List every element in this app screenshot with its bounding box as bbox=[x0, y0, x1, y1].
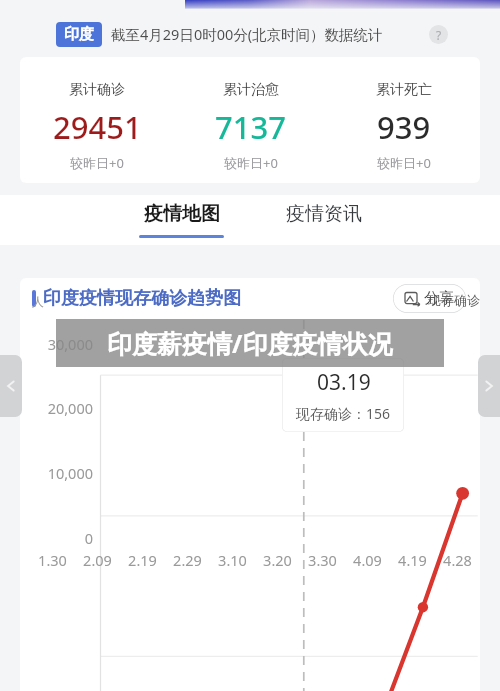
staticText: 累计治愈 bbox=[223, 81, 279, 99]
staticText: 人 bbox=[32, 294, 44, 309]
staticText: 1.30 bbox=[30, 550, 75, 570]
staticText: 4.09 bbox=[345, 550, 390, 570]
staticText: 较昨日+0 bbox=[224, 154, 278, 172]
staticText: 30,000 bbox=[20, 334, 93, 354]
button[interactable]: Previous bbox=[0, 355, 22, 417]
button[interactable]: 分享 bbox=[393, 284, 466, 313]
staticText: 现存确诊：156 bbox=[296, 404, 391, 423]
staticText: 较昨日+0 bbox=[70, 154, 124, 172]
staticText: 20,000 bbox=[20, 398, 93, 418]
staticText: 印度薪疫情/印度疫情状况 bbox=[107, 326, 393, 360]
staticText: 累计确诊 bbox=[69, 81, 125, 99]
button[interactable]: Next bbox=[478, 355, 500, 417]
staticText: 10,000 bbox=[20, 463, 93, 483]
staticText: 2.09 bbox=[75, 550, 120, 570]
staticText: 2.29 bbox=[165, 550, 210, 570]
staticText: 3.20 bbox=[255, 550, 300, 570]
staticText: 0 bbox=[20, 528, 93, 548]
staticText: 939 bbox=[377, 106, 431, 148]
staticText: 印度 bbox=[64, 25, 94, 44]
staticText: 3.30 bbox=[300, 550, 345, 570]
staticText: 较昨日+0 bbox=[377, 154, 431, 172]
button[interactable]: Help bbox=[429, 25, 448, 44]
staticText: 疫情资讯 bbox=[286, 202, 362, 226]
button[interactable]: 累计治愈 bbox=[174, 57, 327, 183]
button[interactable]: 03.19 bbox=[282, 358, 404, 432]
button[interactable]: 疫情地图 bbox=[133, 202, 230, 238]
staticText: ? bbox=[436, 27, 442, 43]
staticText: 现存确诊 bbox=[428, 292, 480, 308]
staticText: 分享 bbox=[424, 289, 454, 308]
staticText: 7137 bbox=[215, 106, 286, 148]
button[interactable]: 累计死亡 bbox=[327, 57, 480, 183]
staticText: 疫情地图 bbox=[144, 202, 220, 226]
button[interactable]: 疫情资讯 bbox=[280, 202, 368, 226]
button[interactable]: 印度 bbox=[56, 22, 102, 47]
staticText: 累计死亡 bbox=[376, 81, 432, 99]
staticText: 4.19 bbox=[390, 550, 435, 570]
staticText: 印度疫情现存确诊趋势图 bbox=[43, 287, 241, 310]
staticText: 3.10 bbox=[210, 550, 255, 570]
staticText: 03.19 bbox=[317, 368, 371, 397]
staticText: 29451 bbox=[53, 106, 142, 148]
button[interactable]: 累计确诊 bbox=[20, 57, 174, 183]
staticText: 2.19 bbox=[120, 550, 165, 570]
staticText: 4.28 bbox=[435, 550, 480, 570]
staticText: 截至4月29日0时00分(北京时间）数据统计 bbox=[111, 24, 383, 44]
